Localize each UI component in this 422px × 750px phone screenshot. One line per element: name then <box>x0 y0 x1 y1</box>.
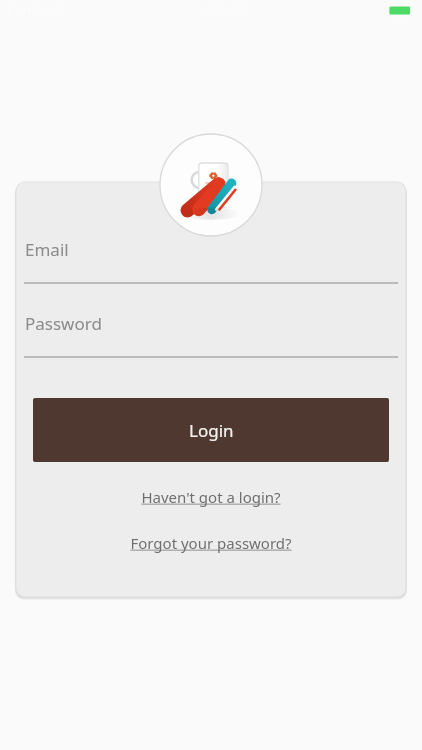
button[interactable]: Email <box>16 238 406 284</box>
staticText: Haven't got a login? <box>141 487 281 507</box>
staticText: Forgot your password? <box>130 533 292 553</box>
button[interactable]: Password <box>16 312 406 358</box>
other: App logo <box>159 133 263 237</box>
staticText: Password <box>25 312 102 335</box>
staticText: Email <box>25 238 69 261</box>
staticText: Login <box>189 419 234 442</box>
button[interactable]: Login <box>33 398 389 462</box>
button[interactable]: Forgot your password? <box>16 533 406 553</box>
button[interactable]: Haven't got a login? <box>16 487 406 507</box>
